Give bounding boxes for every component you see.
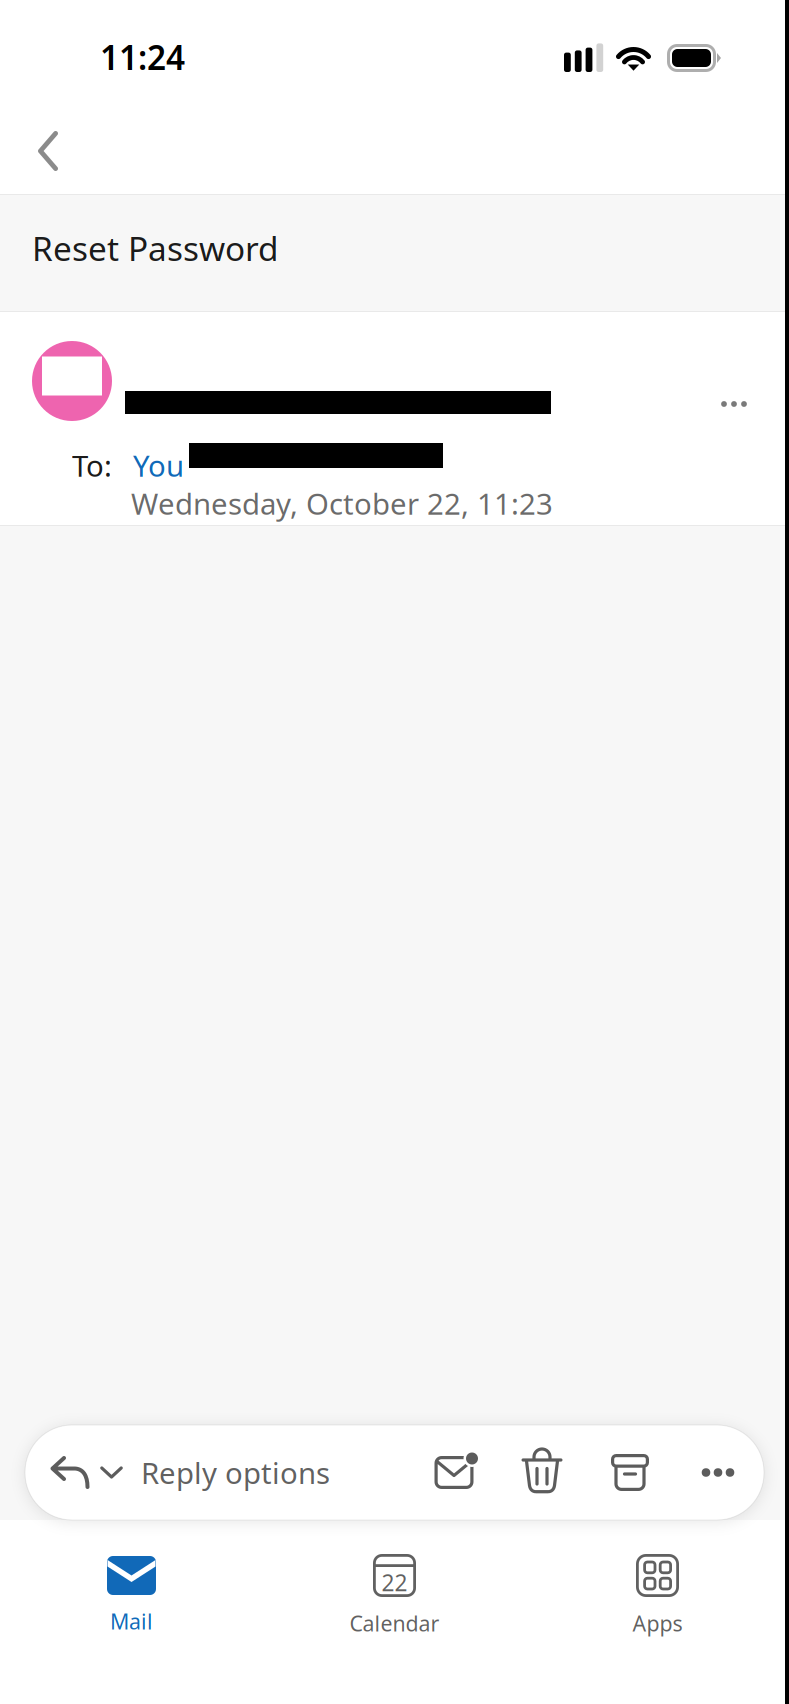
button[interactable]: 22	[263, 1520, 526, 1655]
staticText: To:	[72, 446, 112, 485]
button[interactable]: Mail	[0, 1522, 263, 1653]
button[interactable]: Apps	[526, 1520, 789, 1655]
staticText: 11:24	[100, 35, 185, 79]
staticText: Apps	[632, 1609, 682, 1637]
button[interactable]: Reply options	[25, 1425, 352, 1520]
staticText: Calendar	[349, 1609, 439, 1637]
staticText: Reply options	[141, 1453, 330, 1492]
button[interactable]: More message actions	[695, 365, 773, 443]
button[interactable]: Archive	[591, 1425, 669, 1520]
staticText: Mail	[110, 1607, 153, 1635]
staticText: 22	[381, 1567, 407, 1597]
staticText: Reset Password	[32, 226, 279, 270]
button[interactable]: More actions	[679, 1425, 757, 1520]
button[interactable]: Mark as unread	[415, 1425, 493, 1520]
staticText: Wednesday, October 22, 11:23	[131, 484, 553, 523]
staticText: You	[133, 446, 184, 485]
button[interactable]: Delete	[503, 1425, 581, 1520]
button[interactable]: Back	[12, 104, 84, 186]
